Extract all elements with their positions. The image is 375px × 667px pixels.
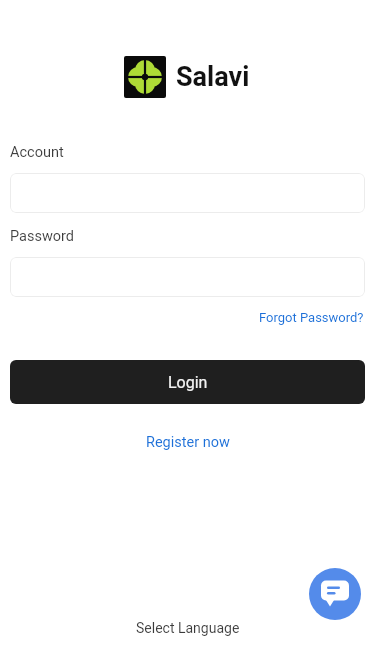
button[interactable] xyxy=(10,173,365,213)
staticText: Salavi xyxy=(176,61,250,93)
button[interactable]: Forgot Password? xyxy=(259,310,364,325)
staticText: Select Language xyxy=(136,620,240,636)
button[interactable] xyxy=(10,257,365,297)
button[interactable]: Select Language xyxy=(136,620,240,636)
staticText: Password xyxy=(10,228,75,245)
button[interactable]: Login xyxy=(10,360,365,404)
staticText: Register now xyxy=(146,434,230,451)
staticText: Account xyxy=(10,144,64,161)
staticText: Login xyxy=(168,373,208,392)
button[interactable]: Register now xyxy=(146,434,230,451)
staticText: Forgot Password? xyxy=(259,310,364,325)
button[interactable] xyxy=(309,568,361,620)
